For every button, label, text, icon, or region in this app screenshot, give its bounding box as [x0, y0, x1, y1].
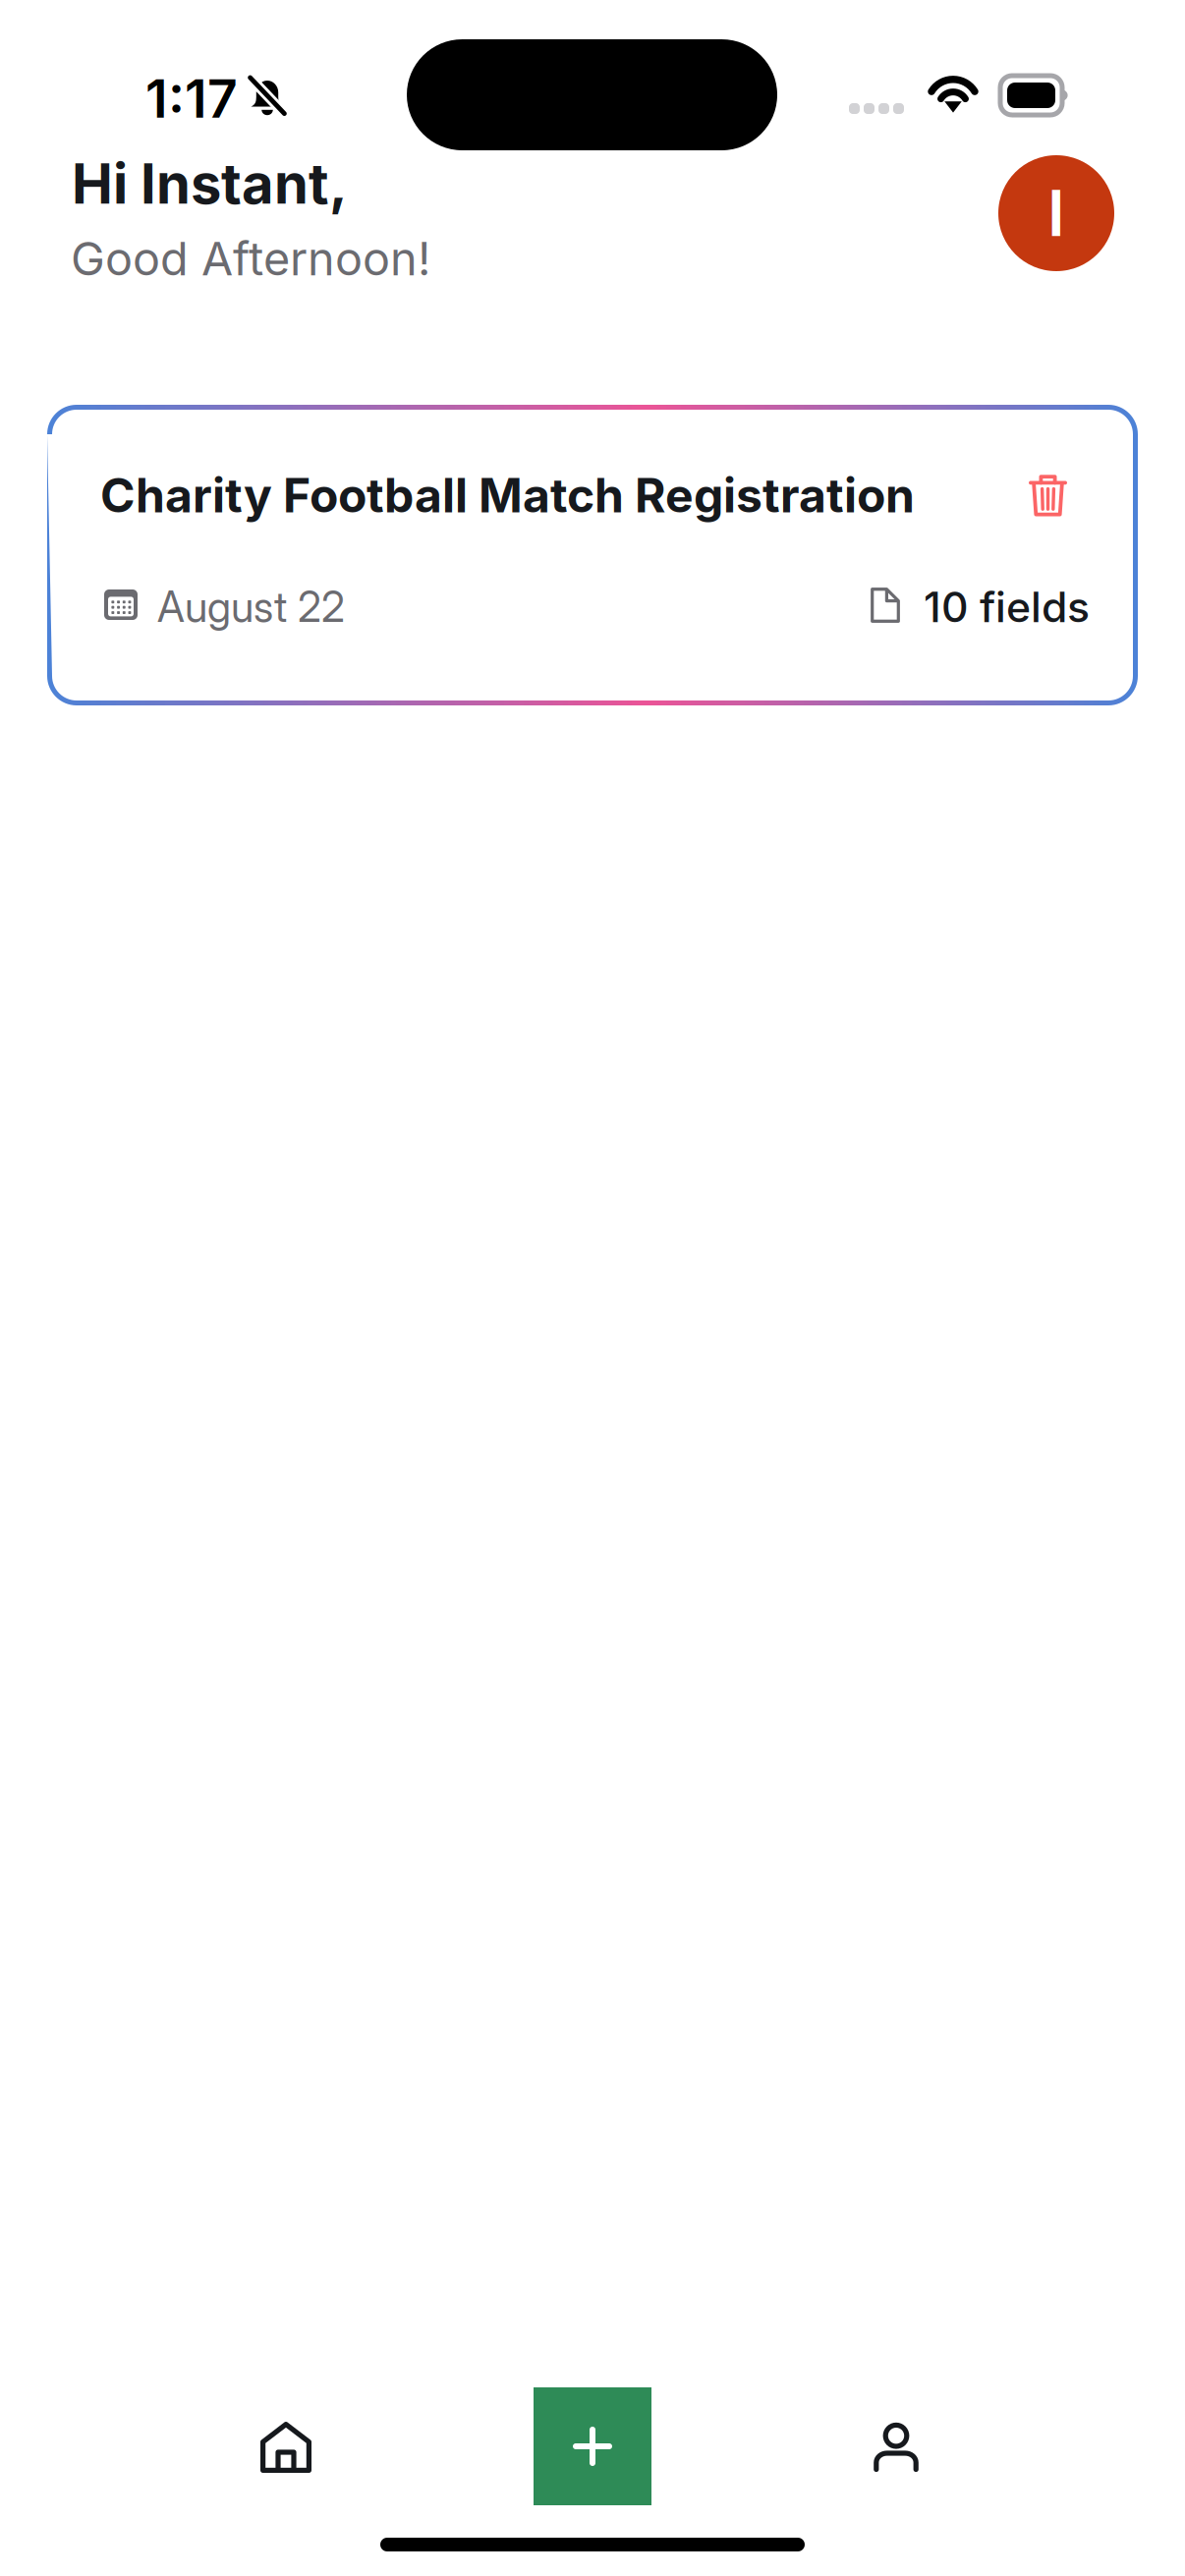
- staticText: Good Afternoon!: [71, 231, 430, 286]
- staticText: August 22: [157, 582, 345, 632]
- button[interactable]: Home: [197, 2374, 374, 2521]
- staticText: 10 fields: [924, 582, 1090, 632]
- staticText: Hi Instant,: [72, 150, 348, 217]
- staticText: Charity Football Match Registration: [100, 467, 915, 524]
- button[interactable]: Account: [998, 155, 1114, 271]
- button[interactable]: Create: [534, 2387, 651, 2505]
- staticText: I: [1047, 175, 1065, 251]
- button[interactable]: Profile: [808, 2374, 985, 2521]
- staticText: 1:17: [145, 67, 238, 130]
- button[interactable]: Charity Football Match Registration: [47, 405, 1138, 705]
